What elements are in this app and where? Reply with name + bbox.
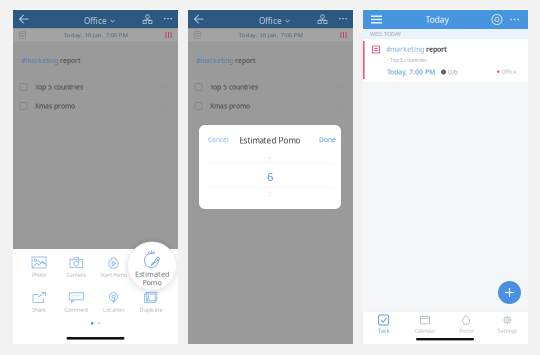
staticText: report xyxy=(233,56,255,65)
button[interactable]: More xyxy=(159,10,177,28)
staticText: Estimated Pomo xyxy=(138,271,163,285)
button[interactable]: Top 5 countries xyxy=(13,81,178,93)
staticText: Estimated Pomo xyxy=(239,135,300,146)
button[interactable]: Duplicate xyxy=(134,292,168,314)
button[interactable]: Add task xyxy=(498,281,521,304)
staticText: Settings xyxy=(497,327,517,334)
staticText: 7 xyxy=(268,190,272,199)
staticText: Xmas promo xyxy=(35,101,75,111)
button[interactable]: Xmas promo xyxy=(188,100,353,112)
staticText: Top 5 countries xyxy=(35,82,83,92)
staticText: 5 xyxy=(268,155,272,164)
button[interactable]: Estimated xyxy=(128,242,176,290)
button[interactable]: Camera xyxy=(59,257,93,279)
staticText: report xyxy=(58,56,80,65)
button[interactable]: Today, 7:00 PM xyxy=(377,63,468,81)
button[interactable]: Pomo xyxy=(445,315,487,334)
staticText: Pomo xyxy=(459,327,473,334)
staticText: #marketing xyxy=(196,56,233,65)
staticText: Duplicate xyxy=(139,306,162,313)
staticText: Today, 7:00 PM xyxy=(387,67,435,77)
staticText: #marketing xyxy=(386,44,424,54)
staticText: Camera xyxy=(67,271,86,278)
staticText: Xmas promo xyxy=(210,101,250,111)
staticText: report xyxy=(424,44,447,54)
button[interactable]: Done xyxy=(315,131,340,148)
button[interactable]: Estimated Pomo xyxy=(134,257,168,279)
button[interactable]: Office xyxy=(79,11,119,31)
staticText: Estimated xyxy=(135,269,169,279)
button[interactable]: Members xyxy=(138,10,157,29)
staticText: 6 xyxy=(267,169,273,184)
staticText: Office xyxy=(502,68,517,75)
button[interactable]: Office xyxy=(254,11,294,31)
button[interactable]: Cancel xyxy=(204,131,233,148)
staticText: Photo xyxy=(32,271,46,278)
button[interactable]: More xyxy=(334,10,352,28)
button[interactable]: Share xyxy=(22,292,56,314)
staticText: Top 5 countries xyxy=(210,82,258,92)
staticText: 0/6 xyxy=(448,67,458,77)
staticText: Done xyxy=(319,135,336,144)
button[interactable]: Back xyxy=(189,10,208,29)
staticText: Office xyxy=(259,16,282,26)
button[interactable]: #marketing xyxy=(363,39,528,82)
staticText: Share xyxy=(32,306,46,313)
staticText: Location xyxy=(103,306,124,313)
staticText: - Top 5 countries xyxy=(387,56,427,64)
staticText: Office xyxy=(84,16,107,26)
button[interactable]: Task xyxy=(363,315,404,334)
button[interactable]: Top 5 countries xyxy=(188,81,353,93)
button[interactable]: Menu xyxy=(367,10,386,28)
button[interactable]: Focus mode xyxy=(488,10,506,28)
staticText: WED, TODAY xyxy=(370,30,401,38)
staticText: Today, 10 Jan, 7:00 PM xyxy=(63,31,127,39)
staticText: Comment xyxy=(64,306,88,313)
button[interactable]: Start Pomo xyxy=(96,257,130,279)
staticText: Today xyxy=(425,14,448,25)
button[interactable]: Members xyxy=(313,10,332,29)
staticText: Pomo xyxy=(142,277,161,287)
staticText: Calendar xyxy=(414,327,435,334)
staticText: #marketing xyxy=(21,56,58,65)
button[interactable]: Settings xyxy=(487,315,528,334)
staticText: Start Pomo xyxy=(100,271,127,278)
staticText: Cancel xyxy=(208,135,229,144)
button[interactable]: Photo xyxy=(22,257,56,279)
button[interactable]: Comment xyxy=(59,292,93,314)
button[interactable]: Calendar xyxy=(404,315,445,334)
button[interactable]: Location xyxy=(96,292,130,314)
button[interactable]: Back xyxy=(14,10,33,29)
button[interactable]: Xmas promo xyxy=(13,100,178,112)
staticText: Task xyxy=(378,327,390,334)
staticText: Today, 10 Jan, 7:00 PM xyxy=(238,31,302,39)
button[interactable]: More xyxy=(506,13,523,26)
